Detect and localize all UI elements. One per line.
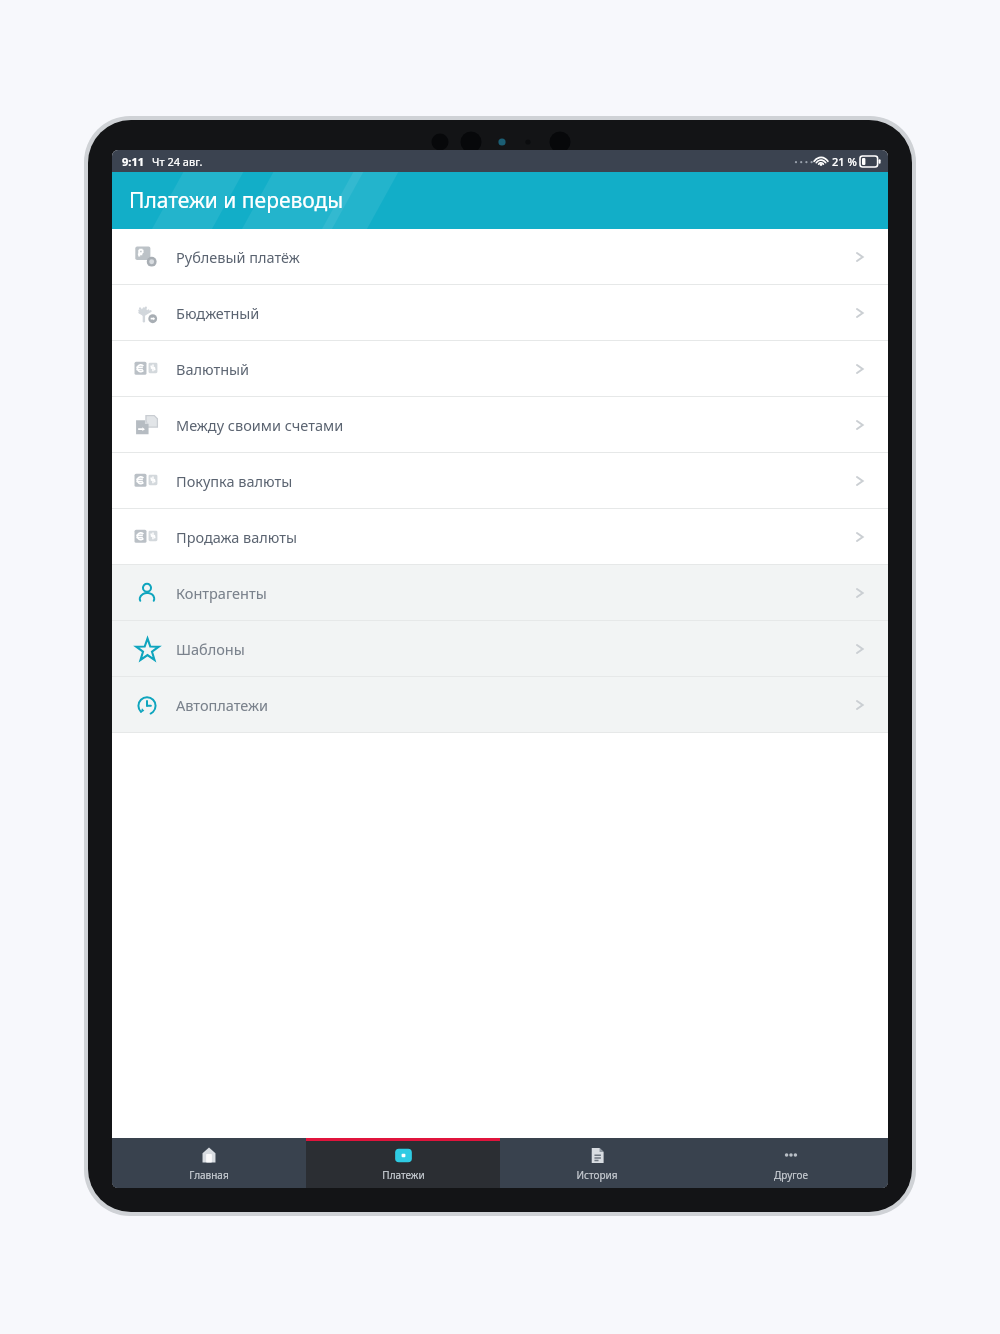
button[interactable]: Бюджетный (112, 285, 888, 340)
button[interactable]: Контрагенты (112, 565, 888, 620)
staticText: Платежи (382, 1168, 425, 1182)
button[interactable]: Покупка валюты (112, 453, 888, 508)
button[interactable]: Главная (112, 1138, 306, 1188)
staticText: Контрагенты (176, 583, 267, 603)
staticText: Валютный (176, 359, 250, 379)
staticText: Чт 24 авг. (152, 154, 203, 169)
staticText: Главная (189, 1168, 229, 1182)
staticText: Продажа валюты (176, 527, 297, 547)
staticText: 9:11 (122, 154, 144, 169)
staticText: Автоплатежи (176, 695, 269, 715)
staticText: Покупка валюты (176, 471, 293, 491)
staticText: Другое (774, 1168, 808, 1182)
button[interactable]: Автоплатежи (112, 677, 888, 732)
button[interactable]: Платежи (306, 1138, 500, 1188)
staticText: 21 % (832, 154, 857, 169)
staticText: Платежи и переводы (129, 186, 344, 215)
staticText: Бюджетный (176, 303, 260, 323)
staticText: Между своими счетами (176, 415, 344, 435)
button[interactable]: Между своими счетами (112, 397, 888, 452)
staticText: Рублевый платёж (176, 247, 300, 267)
button[interactable]: Шаблоны (112, 621, 888, 676)
button[interactable]: Продажа валюты (112, 509, 888, 564)
button[interactable]: Другое (694, 1138, 888, 1188)
staticText: Шаблоны (176, 639, 245, 659)
button[interactable]: Валютный (112, 341, 888, 396)
button[interactable]: Рублевый платёж (112, 229, 888, 284)
button[interactable]: История (500, 1138, 694, 1188)
staticText: История (576, 1168, 618, 1182)
